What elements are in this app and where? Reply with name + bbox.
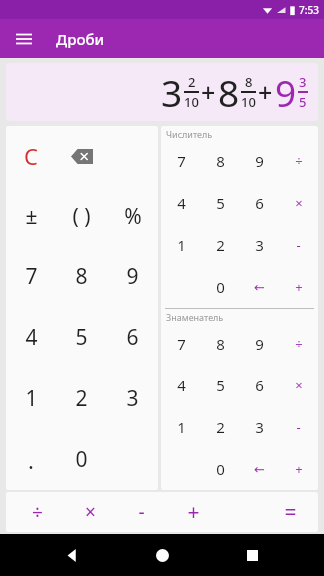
staticText: ←	[254, 280, 265, 295]
staticText: +	[258, 75, 273, 109]
staticText: +	[201, 75, 216, 109]
button[interactable]: 5	[56, 307, 107, 368]
button[interactable]: Home	[144, 537, 180, 573]
button[interactable]: Divide	[279, 323, 318, 364]
staticText: ÷	[295, 335, 303, 353]
staticText: 3	[126, 384, 139, 413]
staticText: -	[138, 499, 145, 525]
staticText: %	[124, 202, 142, 231]
staticText: 3	[255, 235, 264, 255]
button[interactable]: 4	[6, 307, 56, 368]
button[interactable]: 2	[201, 224, 240, 266]
button[interactable]: Multiply	[279, 182, 318, 224]
button[interactable]: Multiply	[73, 492, 108, 532]
button[interactable]: C	[6, 126, 56, 186]
button[interactable]: 8	[201, 140, 240, 182]
button[interactable]: 0	[56, 429, 107, 490]
button[interactable]: Recent apps	[234, 537, 270, 573]
staticText: ×	[295, 376, 303, 394]
button[interactable]: 6	[240, 182, 279, 224]
staticText: 10	[184, 93, 199, 111]
button[interactable]: 2	[201, 406, 240, 448]
staticText: +	[295, 460, 303, 478]
staticText: +	[295, 278, 303, 296]
button[interactable]: ±	[6, 186, 56, 246]
button[interactable]: .	[6, 429, 56, 490]
staticText: 5	[216, 375, 225, 395]
staticText: 1	[177, 417, 186, 437]
staticText: 7	[25, 262, 38, 291]
button[interactable]: 8	[201, 323, 240, 364]
staticText: 8	[218, 67, 240, 117]
button[interactable]: 5	[201, 182, 240, 224]
staticText: 2	[188, 73, 196, 91]
button[interactable]: Divide	[20, 492, 55, 532]
staticText: +	[187, 498, 200, 527]
button[interactable]: Backspace	[56, 126, 107, 186]
button[interactable]: 3	[6, 63, 318, 121]
button[interactable]: 6	[240, 364, 279, 406]
staticText: 9	[275, 67, 297, 117]
staticText: 7	[177, 151, 186, 171]
staticText: 0	[216, 459, 225, 479]
button[interactable]: Plus	[279, 266, 318, 308]
staticText: 3	[299, 73, 307, 91]
staticText: 8	[245, 73, 253, 91]
button[interactable]: 3	[240, 406, 279, 448]
staticText: ( )	[72, 202, 91, 231]
staticText: ÷	[295, 152, 303, 170]
button[interactable]: 3	[240, 224, 279, 266]
button[interactable]: Minus	[279, 406, 318, 448]
staticText: 4	[177, 375, 186, 395]
button[interactable]: Plus	[279, 448, 318, 490]
button[interactable]: 6	[107, 307, 158, 368]
button[interactable]: 7	[6, 246, 56, 307]
button[interactable]: 9	[107, 246, 158, 307]
staticText: 6	[255, 193, 264, 213]
button[interactable]: Back	[54, 537, 90, 573]
button[interactable]: 4	[161, 364, 201, 406]
button[interactable]: %	[107, 186, 158, 246]
staticText: 6	[255, 375, 264, 395]
staticText: 8	[75, 262, 88, 291]
staticText: Дроби	[56, 29, 105, 49]
button[interactable]: 4	[161, 182, 201, 224]
button[interactable]: Open navigation menu	[10, 25, 38, 53]
staticText: 8	[216, 151, 225, 171]
button[interactable]: Backspace	[240, 266, 279, 308]
staticText: 4	[25, 323, 38, 352]
button[interactable]: 3	[107, 368, 158, 429]
button[interactable]: 9	[240, 140, 279, 182]
staticText: 0	[216, 277, 225, 297]
staticText: 3	[161, 67, 183, 117]
button[interactable]: Backspace	[240, 448, 279, 490]
staticText: ÷	[32, 499, 43, 525]
button[interactable]: 1	[6, 368, 56, 429]
staticText: 7:53	[299, 3, 319, 17]
staticText: 1	[25, 384, 38, 413]
button[interactable]: Divide	[279, 140, 318, 182]
button[interactable]: Plus	[176, 492, 211, 532]
button[interactable]: ( )	[56, 186, 107, 246]
button[interactable]: 9	[240, 323, 279, 364]
button[interactable]: 8	[56, 246, 107, 307]
button[interactable]: 0	[201, 266, 240, 308]
button[interactable]: 7	[161, 140, 201, 182]
button[interactable]: 2	[56, 368, 107, 429]
button[interactable]: 1	[161, 406, 201, 448]
button[interactable]: 7	[161, 323, 201, 364]
staticText: =	[284, 498, 297, 527]
button[interactable]: 1	[161, 224, 201, 266]
staticText: 4	[177, 193, 186, 213]
staticText: 7	[177, 334, 186, 354]
button[interactable]: 0	[201, 448, 240, 490]
staticText: 9	[126, 262, 139, 291]
button[interactable]: Minus	[124, 492, 159, 532]
button[interactable]: Minus	[279, 224, 318, 266]
button[interactable]: Equals	[268, 492, 312, 532]
staticText: -	[296, 236, 301, 254]
button[interactable]: 5	[201, 364, 240, 406]
button[interactable]: Multiply	[279, 364, 318, 406]
staticText: 8	[216, 334, 225, 354]
staticText: 9	[255, 334, 264, 354]
